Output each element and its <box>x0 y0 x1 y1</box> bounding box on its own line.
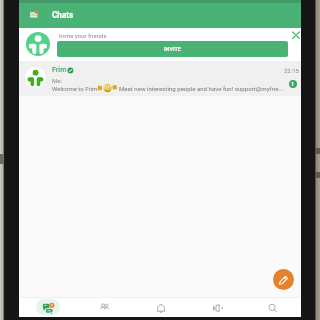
button[interactable]: New chat <box>273 269 294 290</box>
staticText: INVITE <box>164 46 181 52</box>
staticText: Meet new interesting people and have fun… <box>119 85 284 92</box>
button[interactable]: Search <box>245 297 301 317</box>
button[interactable]: People <box>76 297 133 317</box>
staticText: Welcome to Frim <box>52 85 98 92</box>
button[interactable]: Notifications <box>133 297 189 317</box>
button[interactable]: Open navigation menu <box>24 6 42 24</box>
button[interactable]: Frim <box>19 61 301 96</box>
staticText: 1 <box>291 81 295 87</box>
staticText: Chats <box>52 10 74 20</box>
button[interactable]: Chats <box>19 297 76 317</box>
staticText: Me: <box>52 77 62 84</box>
staticText: Invite your friends <box>59 32 107 39</box>
button[interactable]: Dismiss invite <box>290 29 302 41</box>
button[interactable]: Broadcast <box>189 297 245 317</box>
button[interactable]: INVITE <box>57 41 288 57</box>
staticText: Frim <box>52 66 67 74</box>
staticText: 22:15 <box>284 67 299 74</box>
